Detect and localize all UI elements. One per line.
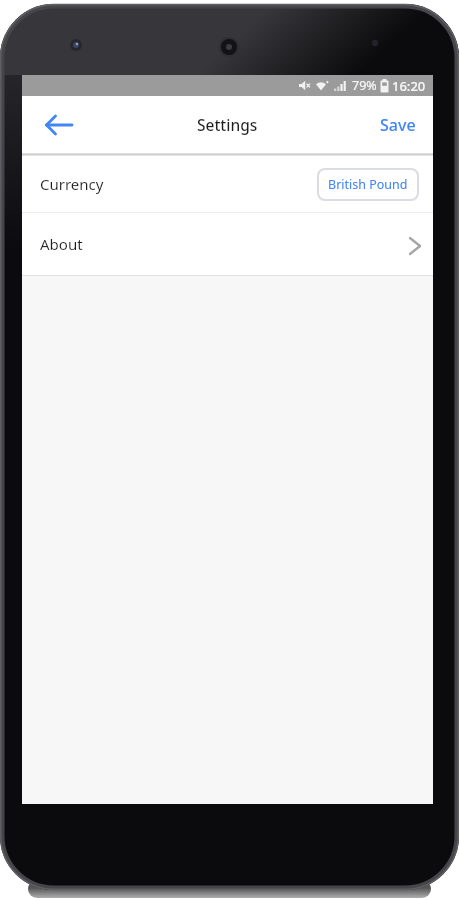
button[interactable] (37, 103, 81, 147)
staticText: Settings (197, 114, 258, 135)
staticText: 79% (352, 77, 377, 94)
staticText: Currency (40, 174, 104, 194)
staticText: 16:20 (392, 77, 426, 95)
staticText: About (40, 234, 83, 254)
button[interactable]: British Pound (317, 168, 419, 201)
button[interactable]: About (22, 213, 433, 275)
staticText: British Pound (328, 176, 408, 193)
button[interactable]: Currency (22, 156, 433, 212)
button[interactable]: Save (380, 114, 416, 136)
staticText: Save (380, 114, 416, 136)
